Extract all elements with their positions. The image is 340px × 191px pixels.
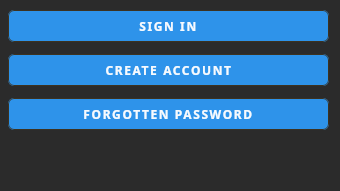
button[interactable]: FORGOTTEN PASSWORD — [8, 98, 329, 130]
staticText: FORGOTTEN PASSWORD — [83, 106, 254, 122]
button[interactable]: CREATE ACCOUNT — [8, 54, 329, 86]
button[interactable]: SIGN IN — [8, 10, 329, 42]
staticText: SIGN IN — [139, 18, 198, 34]
staticText: CREATE ACCOUNT — [105, 62, 233, 78]
